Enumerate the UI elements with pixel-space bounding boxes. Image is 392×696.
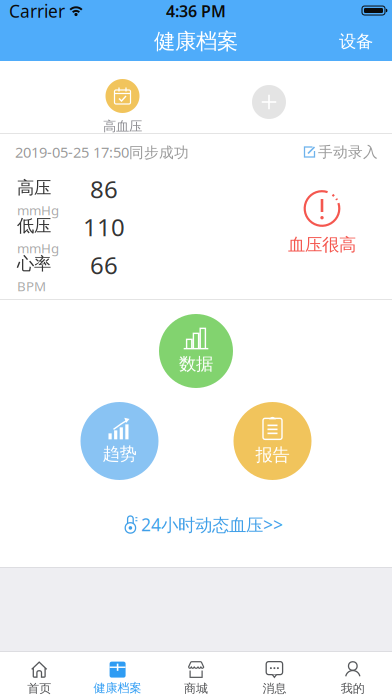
- button[interactable]: 报告: [233, 402, 311, 480]
- staticText: 110: [83, 211, 125, 243]
- staticText: 健康档案: [94, 681, 142, 695]
- staticText: mmHg: [17, 239, 59, 257]
- staticText: Carrier: [9, 0, 65, 22]
- staticText: mmHg: [17, 201, 59, 219]
- staticText: BPM: [17, 277, 46, 295]
- button[interactable]: 商城: [157, 661, 235, 696]
- staticText: 手动录入: [318, 143, 378, 161]
- staticText: 商城: [184, 681, 208, 696]
- button[interactable]: 手动录入: [303, 143, 378, 161]
- staticText: 趋势: [102, 443, 136, 465]
- staticText: 4:36 PM: [166, 0, 226, 22]
- staticText: 高血压: [103, 118, 142, 134]
- staticText: 86: [90, 173, 118, 205]
- button[interactable]: 健康档案: [78, 662, 157, 695]
- button[interactable]: 趋势: [80, 402, 158, 480]
- button[interactable]: 24小时动态血压>>: [125, 513, 283, 536]
- staticText: 高压: [17, 177, 51, 198]
- staticText: 2019-05-25 17:50同步成功: [15, 142, 189, 162]
- button[interactable]: 我的: [314, 661, 392, 696]
- staticText: 低压: [17, 215, 51, 236]
- staticText: 报告: [255, 444, 289, 466]
- button[interactable]: 首页: [0, 661, 78, 696]
- staticText: 24小时动态血压>>: [141, 513, 283, 536]
- staticText: 血压很高: [288, 234, 356, 255]
- button[interactable]: Add profile: [252, 85, 286, 119]
- staticText: 首页: [27, 681, 51, 696]
- staticText: 健康档案: [154, 28, 238, 55]
- button[interactable]: 数据: [159, 314, 233, 388]
- staticText: 心率: [17, 253, 51, 274]
- staticText: 消息: [262, 681, 286, 696]
- staticText: 数据: [179, 353, 213, 375]
- staticText: 66: [90, 249, 118, 281]
- button[interactable]: 高血压: [103, 79, 142, 134]
- staticText: 我的: [341, 681, 365, 696]
- button[interactable]: 消息: [235, 661, 314, 696]
- button[interactable]: 设备: [339, 31, 373, 52]
- staticText: 设备: [339, 31, 373, 52]
